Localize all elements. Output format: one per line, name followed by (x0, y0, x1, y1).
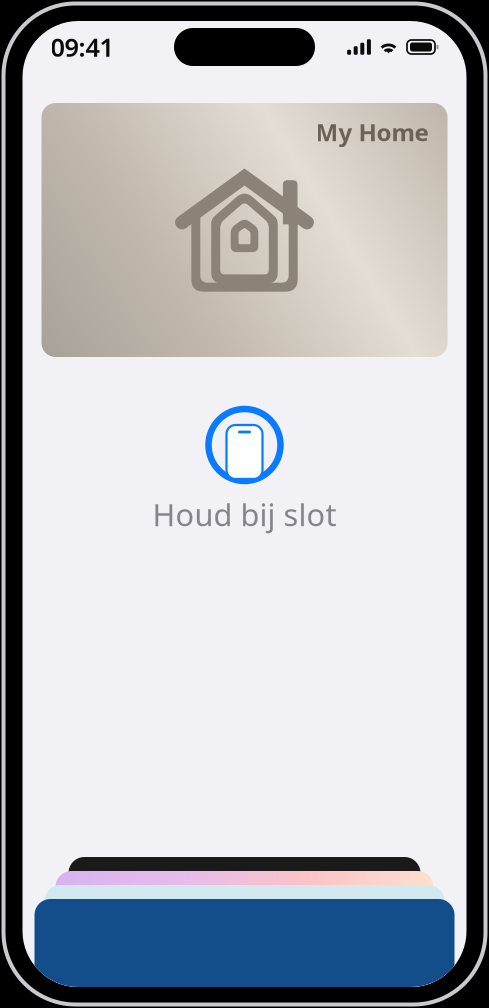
staticText: Houd bij slot (152, 494, 336, 535)
button[interactable]: My Home (41, 103, 447, 357)
staticText: 09:41 (50, 30, 113, 64)
staticText: My Home (315, 116, 428, 148)
